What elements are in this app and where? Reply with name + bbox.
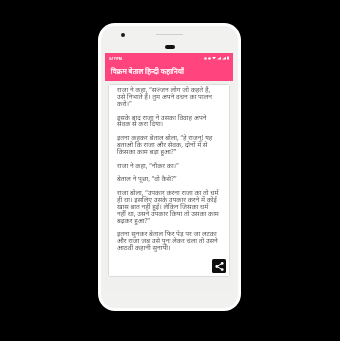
staticText: करो।” [117, 99, 132, 108]
staticText: नहीं था, उसने उपकार किया तो उसका काम [117, 209, 219, 218]
staticText: ही था। इसलिए उसके उपकार करने में कोई [117, 195, 217, 204]
staticText: राजा ने कहा, “नौकर का।” [117, 161, 179, 170]
staticText: खास बात नहीं हुई। लेकिन जिसका धर्म [117, 202, 209, 211]
staticText: और राजा जब उसे पुनः लेकर चला तो उसने [117, 236, 218, 245]
staticText: राजा ने कहा, “सज्जन लोग जो कहते हैं, [117, 85, 211, 94]
staticText: बताओ कि राजा और सेवक, दोनों में से [117, 140, 208, 149]
staticText: उसे निभाते हैं। तुम अपने वचन का पालन [117, 92, 212, 101]
staticText: इतना सुनकर बेताल फिर पेड़ पर जा लटका [117, 229, 217, 238]
staticText: बढ़कर हुआ?” [117, 216, 150, 225]
staticText: राजा बोला, “उपकार करना राजा का तो धर्म [117, 188, 219, 197]
staticText: सेवक से करा दिया। [117, 119, 164, 128]
staticText: बेताल ने पूछा, “वो कैसे?” [117, 174, 177, 183]
staticText: किसका काम बड़ा हुआ?” [117, 147, 177, 156]
button[interactable]: Share [212, 259, 226, 273]
staticText: आठवीं कहानी सुनायी। [117, 243, 171, 252]
staticText: इतना कहकर बेताल बोला, “हे राजन्! यह [117, 133, 213, 142]
staticText: 3:17 PM [109, 56, 122, 61]
staticText: इसके बाद राजा ने उसका विवाह अपने [117, 113, 207, 122]
staticText: विक्रम बेताल हिन्दी कहानियाँ [111, 66, 184, 76]
